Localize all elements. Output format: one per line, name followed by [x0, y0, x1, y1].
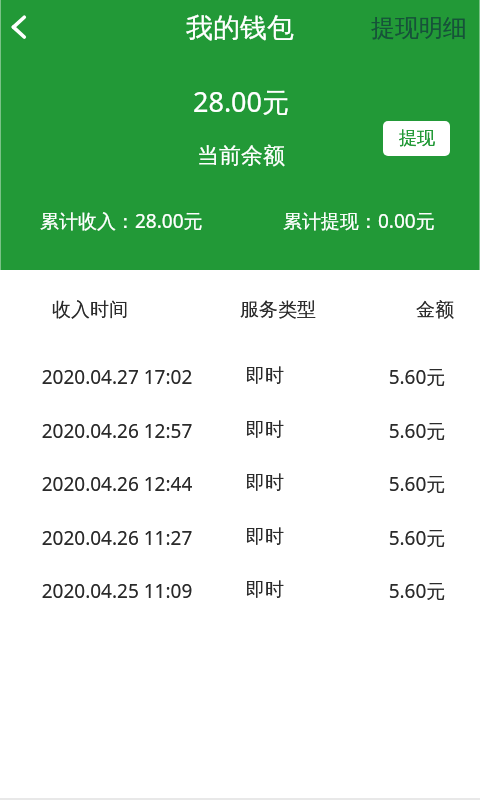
staticText: 金额 [305, 298, 480, 322]
staticText: 2020.04.26 12:57 [0, 418, 247, 444]
staticText: 2020.04.26 11:27 [0, 525, 247, 551]
staticText: 收入时间 [0, 298, 220, 322]
staticText: 5.60元 [287, 471, 480, 497]
staticText: 我的钱包 [110, 11, 370, 45]
staticText: 即时 [135, 578, 395, 602]
staticText: 2020.04.26 11:27 [0, 525, 247, 551]
staticText: 5.60元 [287, 418, 480, 444]
staticText: 5.60元 [287, 364, 480, 390]
button[interactable]: 提现 [383, 121, 450, 156]
staticText: 当前余额 [111, 142, 371, 170]
staticText: 2020.04.25 11:09 [0, 578, 247, 604]
staticText: 即时 [135, 364, 395, 388]
staticText: 即时 [135, 418, 395, 442]
staticText: 服务类型 [148, 298, 408, 322]
staticText: 2020.04.26 12:44 [0, 471, 247, 497]
staticText: 5.60元 [287, 364, 480, 390]
staticText: 即时 [135, 471, 395, 495]
staticText: 提现 [399, 127, 435, 150]
staticText: 累计提现：0.00元 [283, 208, 435, 234]
button[interactable]: 2020.04.26 12:44 [0, 454, 480, 507]
staticText: 累计收入：28.00元 [40, 208, 203, 234]
staticText: 收入时间 [0, 298, 220, 322]
staticText: 5.60元 [287, 578, 480, 604]
staticText: 2020.04.27 17:02 [0, 364, 247, 390]
staticText: 金额 [305, 298, 480, 322]
staticText: 即时 [135, 471, 395, 495]
staticText: 即时 [135, 418, 395, 442]
button[interactable]: 2020.04.26 11:27 [0, 508, 480, 561]
staticText: 即时 [135, 364, 395, 388]
button[interactable]: 2020.04.25 11:09 [0, 561, 480, 614]
staticText: 5.60元 [287, 471, 480, 497]
staticText: 28.00元 [111, 83, 371, 120]
staticText: 2020.04.26 12:57 [0, 418, 247, 444]
staticText: 2020.04.25 11:09 [0, 578, 247, 604]
button[interactable]: 2020.04.27 17:02 [0, 347, 480, 400]
staticText: 即时 [135, 525, 395, 549]
staticText: 即时 [135, 578, 395, 602]
staticText: 提现明细 [371, 13, 467, 43]
staticText: 服务类型 [148, 298, 408, 322]
staticText: 5.60元 [287, 578, 480, 604]
staticText: 5.60元 [287, 418, 480, 444]
staticText: 5.60元 [287, 525, 480, 551]
staticText: 2020.04.27 17:02 [0, 364, 247, 390]
staticText: 即时 [135, 525, 395, 549]
staticText: 2020.04.26 12:44 [0, 471, 247, 497]
button[interactable]: 提现明细 [359, 6, 479, 50]
button[interactable]: 返回 [0, 4, 46, 50]
staticText: 5.60元 [287, 525, 480, 551]
staticText: 提现明细 [371, 13, 467, 43]
staticText: 提现 [399, 127, 435, 150]
button[interactable]: 2020.04.26 12:57 [0, 401, 480, 454]
